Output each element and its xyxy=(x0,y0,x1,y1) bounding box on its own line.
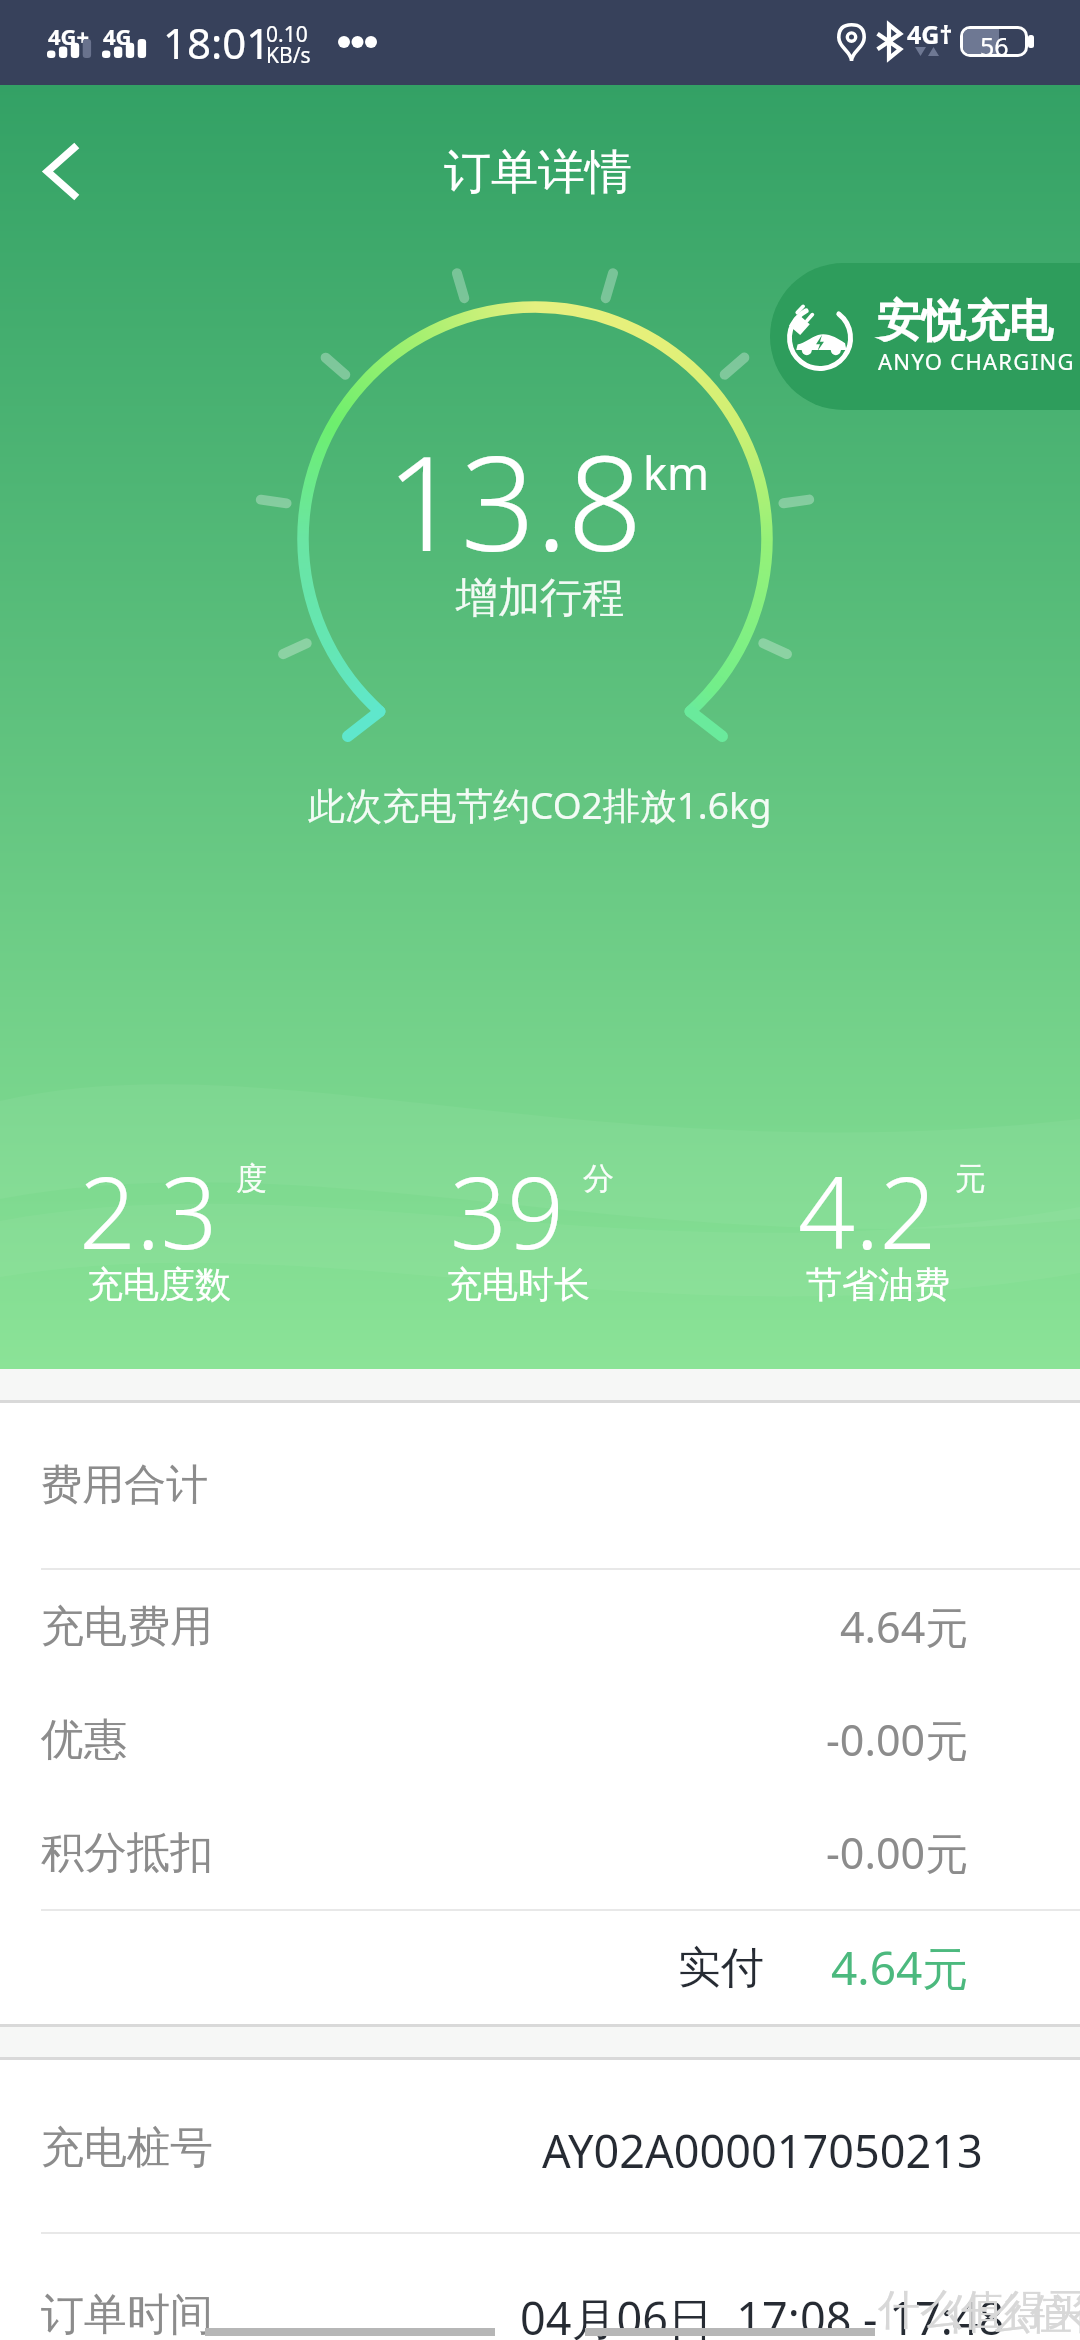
staticText: KB/s xyxy=(266,41,311,70)
staticText: 节省油费 xyxy=(806,1262,950,1307)
staticText: 实付 xyxy=(678,1941,764,1995)
staticText: 此次充电节约CO2排放1.6kg xyxy=(308,779,772,830)
staticText: 安悦充电 xyxy=(877,294,1053,349)
staticText: 39 xyxy=(450,1142,565,1278)
staticText: 优惠 xyxy=(41,1713,127,1767)
staticText: km xyxy=(643,442,710,503)
staticText: 充电度数 xyxy=(87,1262,231,1307)
staticText: 什么值得买 xyxy=(878,2284,1080,2337)
staticText: 04月06日 17:08 - 17:48 xyxy=(520,2287,1005,2340)
staticText: 度 xyxy=(236,1159,267,1198)
staticText: 什么值得买 xyxy=(946,2288,1080,2340)
button[interactable]: ANYO Charging logo xyxy=(770,263,1080,410)
staticText: 4G xyxy=(103,21,132,51)
staticText: 4.2 xyxy=(798,1142,937,1278)
staticText: 充电时长 xyxy=(446,1262,590,1307)
staticText: 4G† xyxy=(907,17,953,51)
staticText: 4.64元 xyxy=(831,1936,969,1999)
staticText: 增加行程 xyxy=(456,572,624,625)
button[interactable]: 实付 xyxy=(0,1911,1080,2024)
staticText: -0.00元 xyxy=(826,1823,969,1882)
staticText: 56 xyxy=(980,29,1009,54)
staticText: 0.10 xyxy=(266,20,308,49)
button[interactable]: 充电桩号 xyxy=(0,2060,1080,2232)
button[interactable]: Back xyxy=(8,113,106,211)
staticText: 订单时间 xyxy=(41,2288,213,2340)
staticText: 13.8 xyxy=(386,411,643,589)
button[interactable]: 充电费用 xyxy=(0,1570,1080,1683)
staticText: 4G+ xyxy=(48,21,90,51)
button[interactable]: 优惠 xyxy=(0,1683,1080,1796)
staticText: 订单详情 xyxy=(444,143,632,202)
staticText: -0.00元 xyxy=(826,1710,969,1769)
button[interactable]: 积分抵扣 xyxy=(0,1796,1080,1909)
staticText: 4.64元 xyxy=(840,1597,969,1656)
staticText: 积分抵扣 xyxy=(41,1826,213,1880)
staticText: 分 xyxy=(583,1159,614,1198)
staticText: 元 xyxy=(955,1159,986,1198)
staticText: 费用合计 xyxy=(40,1459,208,1512)
staticText: 18:01 xyxy=(163,14,271,71)
staticText: AY02A000017050213 xyxy=(542,2120,983,2181)
staticText: 充电桩号 xyxy=(41,2121,213,2175)
staticText: ANYO CHARGING xyxy=(878,346,1075,376)
staticText: 2.3 xyxy=(79,1142,218,1278)
button[interactable]: 订单时间 xyxy=(0,2234,1080,2340)
staticText: 充电费用 xyxy=(41,1600,213,1654)
